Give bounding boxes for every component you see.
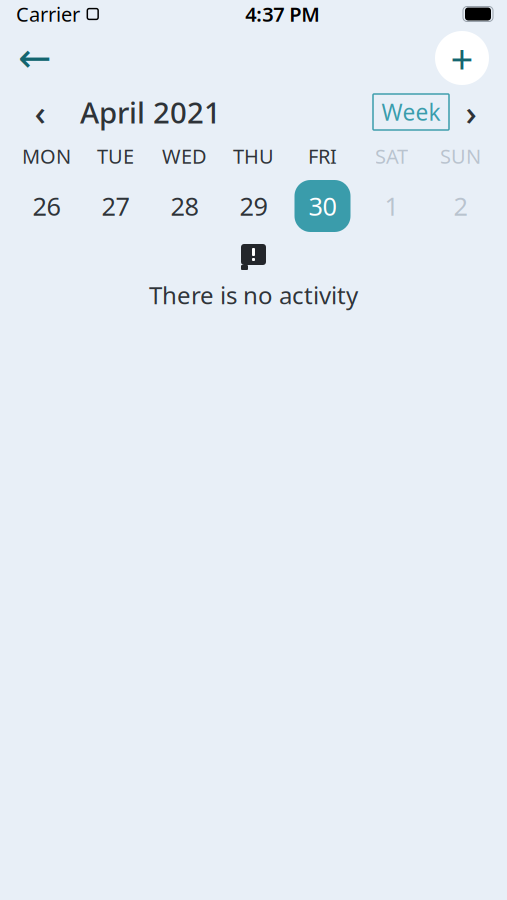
button[interactable]: FRI — [288, 146, 357, 232]
button[interactable]: SUN — [426, 146, 495, 232]
staticText: 26 — [32, 189, 60, 223]
staticText: 28 — [170, 189, 198, 223]
staticText: 4:37 PM — [245, 1, 320, 27]
button[interactable]: THU — [219, 146, 288, 232]
staticText: 27 — [101, 189, 129, 223]
button[interactable]: Back — [8, 31, 62, 85]
staticText: 2 — [453, 189, 467, 223]
button[interactable]: Next week — [449, 90, 493, 134]
staticText: 1 — [384, 189, 398, 223]
button[interactable]: MON — [12, 146, 81, 232]
button[interactable]: Previous week — [18, 90, 62, 134]
staticText: MON — [22, 143, 71, 169]
staticText: 29 — [239, 189, 267, 223]
button[interactable]: Week — [373, 94, 449, 130]
staticText: WED — [162, 143, 207, 169]
staticText: + — [450, 31, 473, 84]
button[interactable]: TUE — [81, 146, 150, 232]
staticText: TUE — [97, 143, 134, 169]
button[interactable]: SAT — [357, 146, 426, 232]
staticText: 30 — [308, 189, 336, 223]
button[interactable]: Add — [435, 31, 489, 85]
staticText: Carrier — [16, 1, 80, 27]
staticText: SUN — [440, 143, 481, 169]
staticText: There is no activity — [149, 279, 358, 311]
staticText: SAT — [375, 143, 408, 169]
staticText: › — [465, 89, 476, 135]
staticText: ← — [18, 35, 52, 81]
staticText: THU — [233, 143, 274, 169]
staticText: Week — [381, 97, 440, 127]
button[interactable]: WED — [150, 146, 219, 232]
staticText: April 2021 — [80, 92, 221, 131]
staticText: ‹ — [34, 89, 45, 135]
staticText: FRI — [308, 143, 337, 169]
